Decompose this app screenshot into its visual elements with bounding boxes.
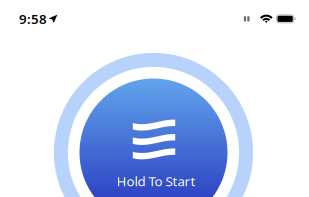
button[interactable]: Hold To Start: [53, 52, 253, 197]
staticText: 9:58: [19, 10, 47, 28]
staticText: Hold To Start: [116, 172, 195, 190]
